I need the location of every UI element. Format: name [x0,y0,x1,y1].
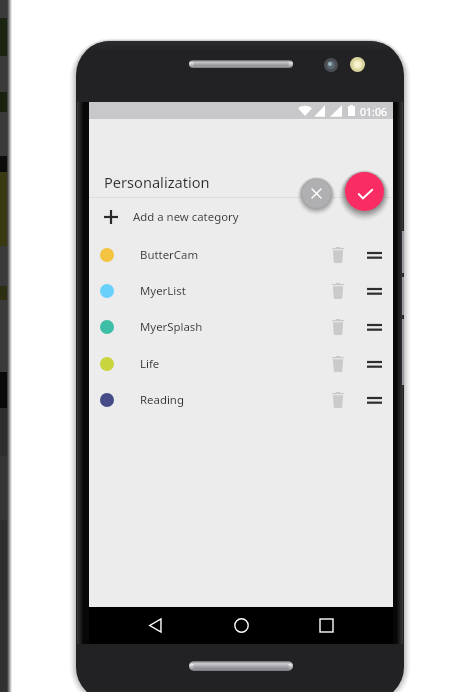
button[interactable]: Recents [308,607,345,644]
button[interactable]: Life [89,346,393,382]
button[interactable]: MyerSplash [89,309,393,345]
button[interactable]: Home [223,607,260,644]
button[interactable]: Delete [323,276,353,306]
button[interactable]: Delete [323,312,353,342]
button[interactable]: Add a new category [89,199,393,235]
button[interactable]: Confirm [345,172,384,211]
button[interactable]: Reorder [359,312,389,342]
staticText: ButterCam [140,247,199,263]
staticText: Add a new category [133,209,239,225]
button[interactable]: Reorder [359,349,389,379]
button[interactable]: MyerList [89,273,393,309]
button[interactable]: Delete [323,349,353,379]
staticText: Life [140,356,160,372]
button[interactable]: Cancel [302,179,331,208]
button[interactable]: Delete [323,240,353,270]
staticText: MyerList [140,283,186,299]
button[interactable]: Reorder [359,240,389,270]
staticText: MyerSplash [140,319,203,335]
staticText: Personalization [104,172,210,192]
button[interactable]: Delete [323,385,353,415]
button[interactable]: Reorder [359,385,389,415]
button[interactable]: Back [137,607,174,644]
staticText: Reading [140,392,184,408]
button[interactable]: ButterCam [89,237,393,273]
button[interactable]: Reading [89,382,393,418]
staticText: 01:06 [360,105,388,119]
button[interactable]: Reorder [359,276,389,306]
